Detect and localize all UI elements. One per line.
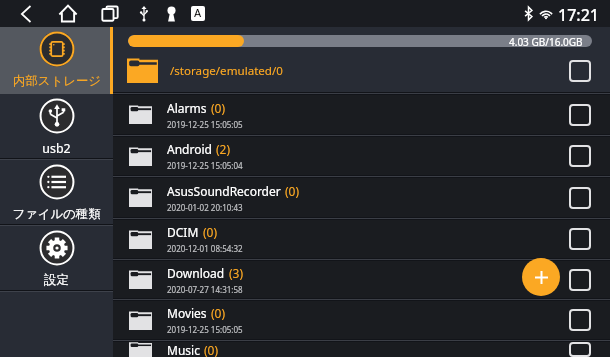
button[interactable]: usb2 [0,94,113,158]
staticText: A [194,6,202,20]
button[interactable]: Movies [113,301,610,339]
button[interactable]: Download [113,261,610,298]
staticText: 2019-12-25 15:05:05 [167,119,243,130]
button[interactable]: 内部ストレージ [0,27,113,94]
staticText: 2019-12-25 15:05:05 [167,324,243,335]
staticText: DCIM [167,224,199,240]
staticText: (0) [285,183,300,199]
staticText: usb2 [42,140,71,157]
staticText: 設定 [44,272,69,288]
button[interactable]: /storage/emulated/0 [113,49,610,92]
staticText: AsusSoundRecorder [167,183,281,199]
staticText: (0) [203,224,218,240]
staticText: 2020-01-02 20:10:43 [167,202,243,213]
button[interactable]: AsusSoundRecorder [113,178,610,217]
button[interactable]: Recents [99,0,121,27]
button[interactable]: Music [113,342,610,357]
staticText: 4.03 GB/16.0GB [509,35,583,47]
button[interactable]: VPN [164,0,178,27]
button[interactable]: 設定 [0,226,113,290]
staticText: Music [167,342,200,357]
staticText: (3) [229,265,244,281]
button[interactable]: Alarms [113,95,610,134]
staticText: ファイルの種類 [12,206,101,222]
staticText: 2020-07-27 14:31:58 [167,284,243,295]
staticText: (0) [211,100,226,116]
button[interactable]: Android [113,137,610,175]
button[interactable]: DCIM [113,220,610,258]
staticText: Alarms [167,100,207,116]
button[interactable]: ファイルの種類 [0,160,113,224]
staticText: (0) [211,305,226,321]
staticText: Download [167,265,225,281]
staticText: Android [167,141,212,157]
button[interactable]: Home [56,0,80,27]
button[interactable]: Input method [191,6,205,21]
staticText: /storage/emulated/0 [170,63,283,79]
button[interactable]: Back [14,0,38,27]
staticText: 17:21 [558,4,599,26]
staticText: (2) [216,141,231,157]
staticText: Movies [167,305,207,321]
button[interactable]: Add [522,258,560,296]
staticText: 2019-12-25 15:05:04 [167,160,243,171]
staticText: (0) [204,342,219,357]
staticText: 2020-12-01 08:54:32 [167,243,243,254]
staticText: 内部ストレージ [13,73,101,89]
button[interactable]: USB [137,0,151,27]
